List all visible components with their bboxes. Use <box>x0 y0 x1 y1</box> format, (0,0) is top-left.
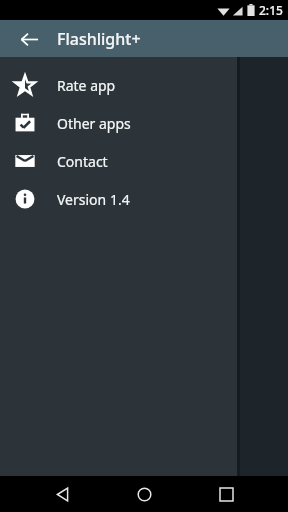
button[interactable]: Recent apps <box>206 476 246 512</box>
button[interactable]: Other apps <box>0 104 237 142</box>
button[interactable]: Back <box>42 476 82 512</box>
staticText: 2:15 <box>259 2 283 18</box>
button[interactable]: Back <box>13 23 45 55</box>
staticText: Version 1.4 <box>57 190 130 209</box>
button[interactable]: Rate app <box>0 66 237 104</box>
button[interactable]: Home <box>124 476 164 512</box>
button[interactable]: Version 1.4 <box>0 180 237 218</box>
staticText: Flashlight+ <box>57 28 141 50</box>
staticText: Other apps <box>57 114 131 133</box>
staticText: Contact <box>57 152 108 171</box>
button[interactable]: Contact <box>0 142 237 180</box>
staticText: Rate app <box>57 76 116 95</box>
